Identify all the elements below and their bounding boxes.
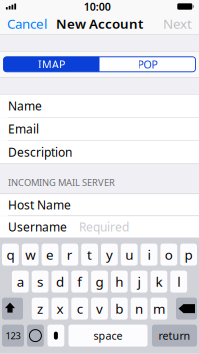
button[interactable]: v: [91, 298, 108, 320]
staticText: h: [115, 273, 123, 290]
button[interactable]: f: [71, 271, 88, 293]
button[interactable]: m: [150, 298, 167, 320]
button[interactable]: h: [111, 271, 128, 293]
staticText: j: [138, 273, 141, 290]
button[interactable]: Host Name: [0, 194, 199, 216]
staticText: INCOMING MAIL SERVER: [8, 176, 115, 189]
staticText: Host Name: [8, 197, 71, 213]
staticText: x: [56, 300, 63, 317]
button[interactable]: Email: [0, 118, 199, 140]
button[interactable]: g: [91, 271, 108, 293]
button[interactable]: d: [51, 271, 68, 293]
staticText: Cancel: [7, 15, 47, 32]
staticText: r: [67, 246, 73, 263]
staticText: e: [46, 246, 54, 263]
staticText: a: [17, 273, 24, 290]
staticText: Next: [163, 15, 192, 32]
button[interactable]: Dictate: [47, 325, 64, 347]
button[interactable]: Username: [0, 216, 199, 238]
staticText: f: [77, 273, 82, 290]
staticText: IMAP: [38, 57, 65, 71]
staticText: o: [165, 246, 173, 263]
button[interactable]: Name: [0, 95, 199, 117]
button[interactable]: POP: [99, 57, 195, 72]
staticText: y: [106, 246, 113, 263]
staticText: g: [95, 273, 103, 290]
button[interactable]: n: [131, 298, 147, 320]
staticText: m: [153, 300, 165, 317]
staticText: w: [25, 246, 35, 263]
button[interactable]: k: [150, 271, 167, 293]
staticText: p: [185, 246, 193, 263]
button[interactable]: l: [170, 271, 187, 293]
staticText: k: [155, 273, 162, 290]
staticText: Username: [8, 219, 67, 235]
staticText: 10:00: [84, 0, 111, 14]
staticText: Email: [8, 121, 39, 137]
button[interactable]: Next: [156, 13, 199, 33]
staticText: u: [125, 246, 133, 263]
button[interactable]: Delete: [176, 298, 197, 320]
staticText: q: [6, 246, 14, 263]
staticText: b: [115, 300, 123, 317]
button[interactable]: t: [81, 244, 98, 266]
button[interactable]: Cancel: [0, 13, 54, 33]
button[interactable]: y: [101, 244, 118, 266]
staticText: n: [135, 300, 143, 317]
staticText: i: [147, 246, 150, 263]
staticText: space: [93, 328, 122, 343]
staticText: Name: [8, 98, 42, 114]
staticText: return: [158, 328, 190, 343]
button[interactable]: p: [180, 244, 197, 266]
button[interactable]: x: [51, 298, 68, 320]
button[interactable]: a: [12, 271, 29, 293]
button[interactable]: s: [32, 271, 48, 293]
staticText: c: [77, 300, 83, 317]
staticText: Description: [8, 144, 72, 160]
button[interactable]: b: [111, 298, 128, 320]
button[interactable]: o: [160, 244, 177, 266]
button[interactable]: Shift: [2, 298, 23, 320]
button[interactable]: return: [152, 325, 197, 347]
button[interactable]: i: [141, 244, 157, 266]
staticText: s: [37, 273, 43, 290]
button[interactable]: q: [2, 244, 19, 266]
button[interactable]: Emoji: [27, 325, 44, 347]
button[interactable]: u: [121, 244, 138, 266]
button[interactable]: 123: [2, 325, 24, 347]
button[interactable]: c: [71, 298, 88, 320]
staticText: t: [87, 246, 92, 263]
button[interactable]: j: [131, 271, 147, 293]
button[interactable]: Description: [0, 141, 199, 164]
button[interactable]: e: [42, 244, 58, 266]
button[interactable]: w: [22, 244, 39, 266]
staticText: New Account: [56, 15, 143, 32]
button[interactable]: z: [32, 298, 48, 320]
staticText: d: [56, 273, 64, 290]
button[interactable]: space: [68, 325, 147, 347]
staticText: POP: [137, 57, 157, 71]
staticText: v: [96, 300, 103, 317]
staticText: 123: [5, 329, 20, 342]
staticText: z: [37, 300, 43, 317]
button[interactable]: IMAP: [3, 57, 99, 72]
button[interactable]: r: [61, 244, 78, 266]
staticText: Required: [79, 219, 129, 235]
staticText: l: [177, 273, 180, 290]
